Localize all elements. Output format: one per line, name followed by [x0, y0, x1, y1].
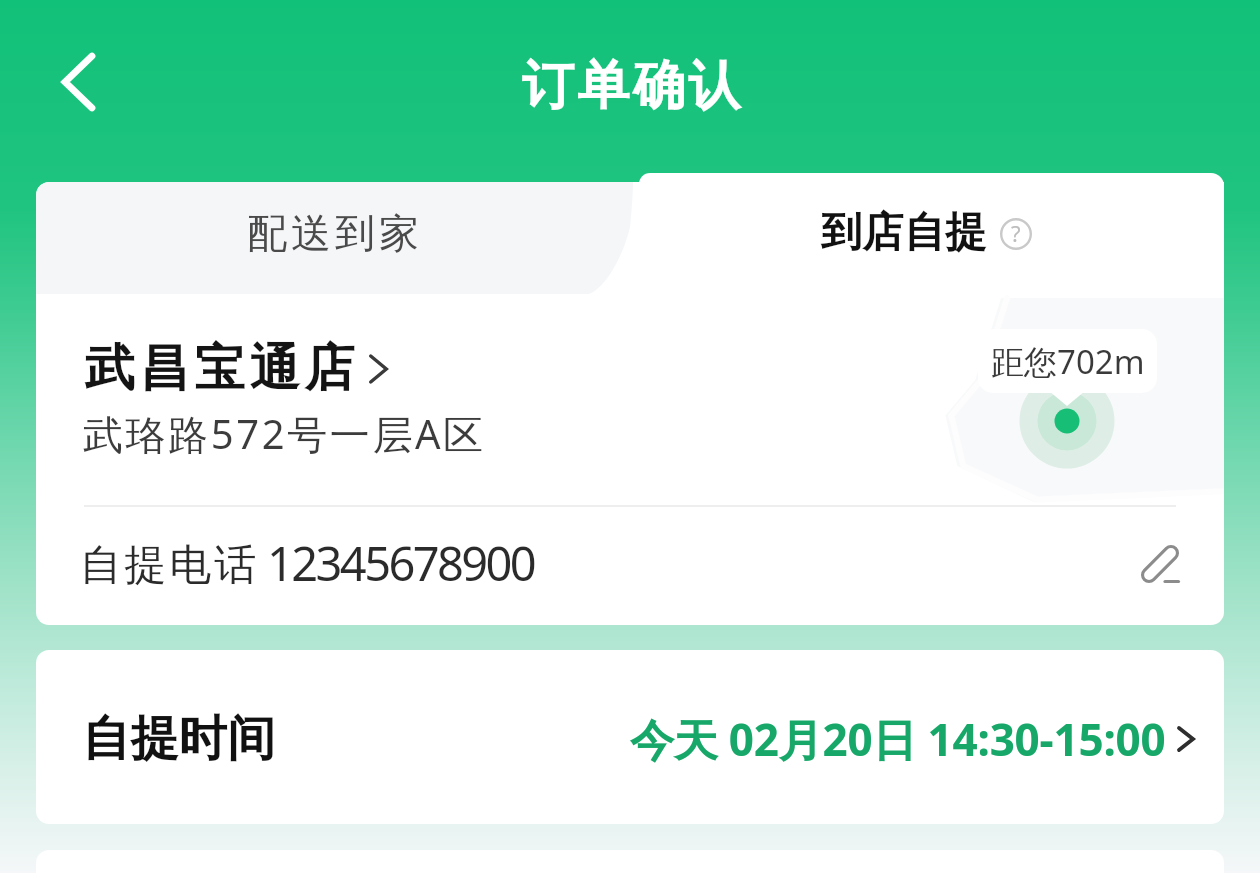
staticText: 订单确认 [520, 53, 742, 119]
staticText: 自提时间 [82, 709, 276, 769]
button[interactable]: 自提时间 [36, 650, 1224, 824]
staticText: 武昌宝通店 [82, 337, 357, 400]
staticText: 到店自提 [821, 207, 987, 259]
staticText: ? [1011, 218, 1021, 248]
button[interactable]: 配送到家 [36, 182, 636, 294]
button[interactable]: Help about in-store pickup [1000, 218, 1032, 250]
staticText: 今天 02月20日 14:30-15:00 [630, 709, 1166, 769]
button[interactable]: 到店自提 [614, 182, 1224, 298]
button[interactable]: Back [43, 47, 111, 115]
staticText: 武珞路572号一层A区 [83, 406, 486, 461]
button[interactable] [36, 298, 1224, 509]
staticText: 自提电话 [78, 539, 258, 592]
staticText: 距您702m [991, 339, 1145, 384]
staticText: 12345678900 [267, 531, 535, 595]
staticText: 配送到家 [245, 208, 421, 258]
button[interactable]: Edit phone number [1124, 530, 1180, 586]
button[interactable] [36, 506, 1224, 625]
